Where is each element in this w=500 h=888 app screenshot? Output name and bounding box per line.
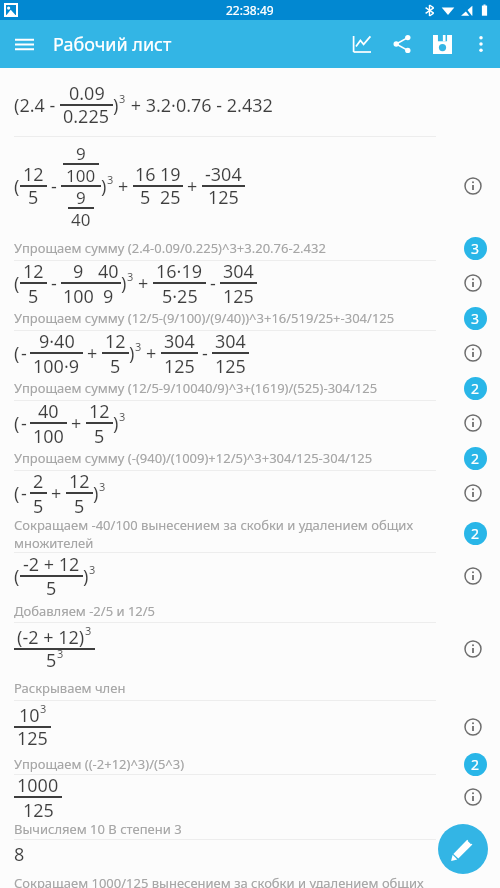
staticText: 19	[160, 162, 181, 187]
staticText: -2 + 12	[23, 552, 80, 577]
button[interactable]: Info	[459, 840, 487, 868]
button[interactable]: 3	[464, 237, 487, 260]
staticText: Добавляем -2/5 и 12/5	[14, 602, 156, 620]
staticText: 12	[89, 399, 110, 424]
button[interactable]: 2	[464, 377, 487, 400]
staticText: 2	[471, 524, 480, 543]
staticText: (	[14, 411, 20, 436]
button[interactable]: Info	[459, 409, 487, 437]
staticText: 2	[33, 469, 44, 494]
staticText: 5	[94, 424, 105, 445]
staticText: +	[146, 341, 157, 366]
staticText: -304	[205, 162, 242, 187]
staticText: 100·9	[33, 354, 80, 375]
staticText: 40	[98, 259, 119, 284]
staticText: 9	[76, 142, 86, 165]
staticText: 5	[28, 284, 39, 305]
staticText: Рабочий лист	[53, 32, 172, 57]
staticText: Сокращаем 1000/125 вынесением за скобки …	[14, 874, 424, 888]
staticText: 100	[63, 284, 94, 305]
staticText: (	[14, 174, 20, 199]
staticText: 0.09	[69, 81, 105, 106]
staticText: (-2 + 12)	[17, 625, 85, 650]
staticText: 304	[164, 329, 195, 354]
staticText: 22:38:49	[226, 2, 274, 18]
staticText: Раскрываем член	[14, 679, 126, 697]
button[interactable]: Info	[459, 562, 487, 590]
button[interactable]: 3	[464, 307, 487, 330]
staticText: 25	[160, 185, 181, 210]
staticText: 3	[471, 239, 480, 258]
staticText: 8	[14, 842, 25, 867]
staticText: 16·19	[156, 259, 203, 284]
staticText: 125	[215, 354, 246, 375]
staticText: 12	[23, 162, 44, 187]
staticText: 100	[33, 424, 64, 445]
staticText: +	[138, 271, 149, 296]
staticText: Упрощаем сумму (12/5-(9/100)/(9/40))^3+1…	[14, 309, 395, 327]
staticText: 3	[135, 339, 142, 354]
staticText: )	[83, 564, 89, 589]
staticText: Упрощаем сумму (-(940)/(1009)+12/5)^3+30…	[14, 449, 373, 467]
staticText: + 3.2·0.76 - 2.432	[126, 93, 273, 118]
staticText: 3	[471, 309, 480, 328]
staticText: (	[14, 341, 20, 366]
staticText: 125	[164, 354, 195, 375]
staticText: 3	[119, 409, 126, 424]
button[interactable]: Info	[459, 479, 487, 507]
staticText: 3	[89, 562, 96, 577]
button[interactable]: 2	[464, 522, 487, 545]
staticText: Вычисляем 10 В степени 3	[14, 820, 182, 838]
staticText: 12	[105, 329, 126, 354]
staticText: 3	[107, 172, 114, 187]
button[interactable]: Info	[459, 172, 487, 200]
staticText: 2	[471, 379, 480, 398]
button[interactable]: Info	[459, 635, 487, 663]
staticText: 5·25	[162, 284, 198, 305]
staticText: -	[21, 341, 27, 366]
staticText: 5	[140, 185, 151, 210]
staticText: 100	[66, 164, 96, 187]
button[interactable]: Info	[459, 339, 487, 367]
staticText: -	[202, 341, 208, 366]
staticText: 5	[110, 354, 121, 375]
button[interactable]: Share	[382, 24, 422, 64]
staticText: 5	[28, 185, 39, 210]
staticText: -	[51, 271, 57, 296]
staticText: 12	[23, 259, 44, 284]
button[interactable]: Save	[422, 24, 462, 64]
staticText: )	[129, 341, 135, 366]
staticText: 9	[76, 186, 86, 209]
staticText: +	[71, 411, 82, 436]
staticText: -	[21, 481, 27, 506]
staticText: 3	[57, 646, 64, 661]
button[interactable]: Info	[459, 269, 487, 297]
staticText: Упрощаем ((-2+12)^3)/(5^3)	[14, 755, 185, 773]
staticText: -	[210, 271, 216, 296]
staticText: 125	[23, 798, 54, 819]
staticText: 5	[74, 494, 85, 515]
staticText: 304	[223, 259, 254, 284]
button[interactable]: Info	[459, 783, 487, 811]
button[interactable]: More options	[462, 25, 500, 63]
button[interactable]: Graph	[342, 24, 382, 64]
staticText: )	[121, 271, 127, 296]
staticText: -	[51, 174, 57, 199]
button[interactable]: Edit	[438, 824, 488, 874]
staticText: Упрощаем сумму (2.4-0.09/0.225)^3+3.20.7…	[14, 239, 326, 257]
staticText: 5	[33, 494, 44, 515]
staticText: (	[14, 481, 20, 506]
staticText: +	[51, 481, 62, 506]
staticText: +	[187, 174, 198, 199]
staticText: )	[113, 93, 119, 118]
staticText: 9	[73, 259, 84, 284]
staticText: +	[118, 174, 129, 199]
button[interactable]: 2	[464, 447, 487, 470]
staticText: Сокращаем -40/100 вынесением за скобки и…	[14, 516, 448, 552]
staticText: 3	[40, 701, 47, 716]
staticText: 3	[127, 269, 134, 284]
button[interactable]: Menu	[6, 26, 42, 62]
staticText: 16	[135, 162, 156, 187]
button[interactable]: Info	[459, 713, 487, 741]
button[interactable]: 2	[464, 753, 487, 776]
